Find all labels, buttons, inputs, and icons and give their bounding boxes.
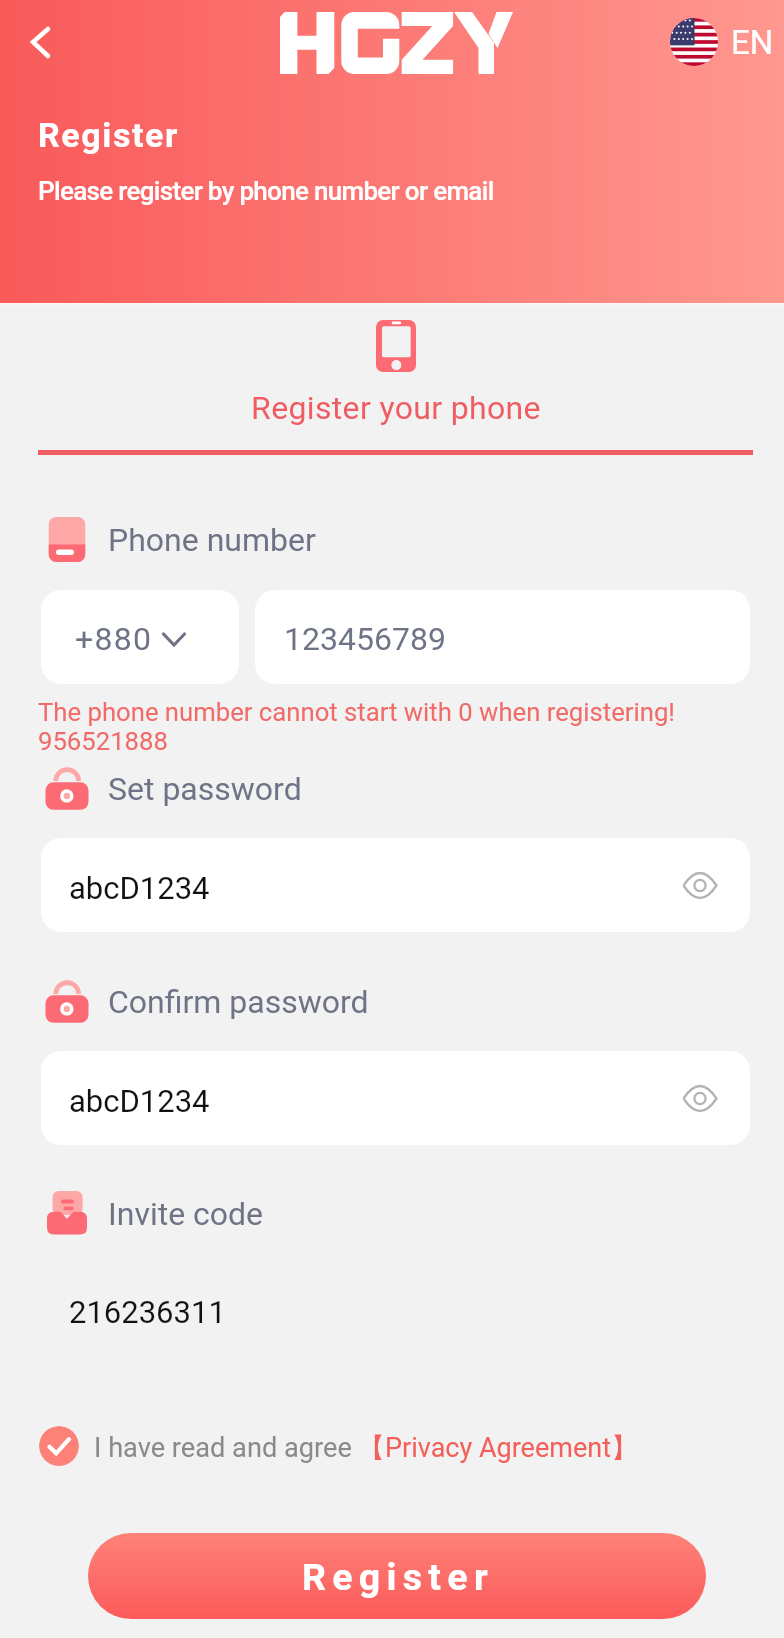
button[interactable]: Register (88, 1533, 706, 1619)
staticText: Register (302, 1555, 494, 1599)
button[interactable]: Language EN (670, 16, 774, 68)
staticText: The phone number cannot start with 0 whe… (38, 697, 675, 756)
staticText: Phone number (108, 521, 316, 559)
staticText: EN (731, 23, 774, 62)
staticText: Register (38, 115, 180, 155)
button[interactable]: Agree to privacy agreement (39, 1426, 79, 1466)
staticText: 123456789 (284, 620, 446, 658)
staticText: abcD1234 (69, 870, 210, 906)
staticText: Please register by phone number or email (38, 176, 494, 206)
staticText: +880 (75, 620, 153, 658)
button[interactable]: Country code +880 (41, 590, 239, 684)
staticText: Invite code (108, 1195, 264, 1233)
button[interactable]: 【Privacy Agreement】 (358, 1429, 638, 1463)
button[interactable]: abcD1234 (41, 1051, 750, 1145)
button[interactable]: Back (8, 12, 72, 72)
button[interactable]: abcD1234 (41, 838, 750, 932)
staticText: I have read and agree (94, 1432, 352, 1464)
staticText: 【Privacy Agreement】 (358, 1431, 638, 1465)
staticText: Register your phone (8, 389, 784, 427)
staticText: 216236311 (69, 1294, 226, 1330)
button[interactable]: Show password (680, 865, 720, 905)
button[interactable]: 123456789 (255, 590, 750, 684)
button[interactable]: Show password (680, 1078, 720, 1118)
staticText: abcD1234 (69, 1083, 210, 1119)
button[interactable]: 216236311 (41, 1265, 750, 1359)
staticText: Set password (108, 770, 302, 808)
staticText: Confirm password (108, 983, 369, 1021)
